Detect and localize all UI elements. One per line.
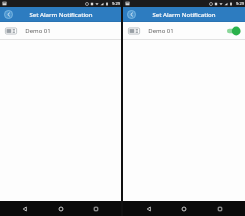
staticText: 9:29 <box>236 1 244 6</box>
button[interactable]: Recent apps <box>86 201 106 216</box>
staticText: Set Alarm Notification <box>29 11 93 19</box>
button[interactable]: Back <box>15 201 35 216</box>
button[interactable]: Back <box>126 9 137 20</box>
staticText: 9:29 <box>112 1 120 6</box>
button[interactable]: Demo 01 <box>0 22 121 39</box>
staticText: Demo 01 <box>148 27 174 35</box>
button[interactable]: Home <box>51 201 71 216</box>
button[interactable]: Back <box>139 201 159 216</box>
button[interactable]: Back <box>3 9 14 20</box>
button[interactable]: Alarm enabled <box>225 26 241 36</box>
button[interactable]: Demo 01 <box>123 22 245 39</box>
staticText: Demo 01 <box>25 27 51 35</box>
button[interactable]: Home <box>174 201 194 216</box>
staticText: Set Alarm Notification <box>152 11 216 19</box>
button[interactable]: Recent apps <box>210 201 230 216</box>
